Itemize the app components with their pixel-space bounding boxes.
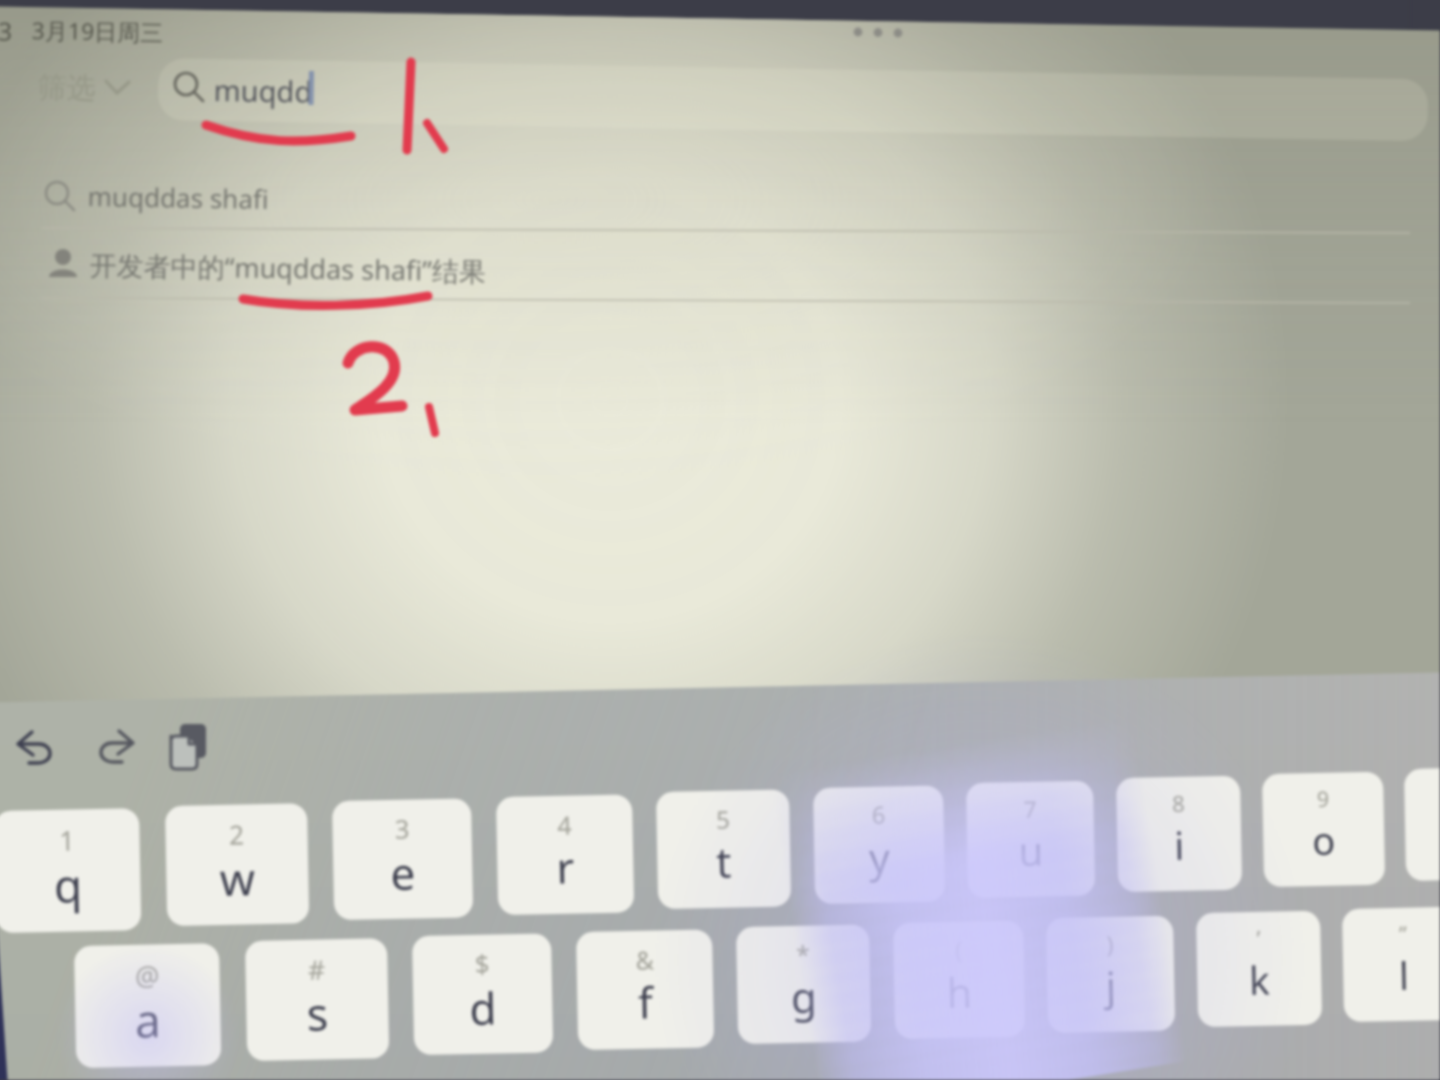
staticText: ’ (1196, 922, 1322, 1038)
staticText: i (1117, 817, 1243, 933)
staticText: y (814, 827, 946, 946)
button[interactable]: 3 (332, 798, 473, 920)
staticText: & (576, 941, 714, 1062)
button[interactable]: ” (1342, 907, 1440, 1022)
staticText: r (497, 836, 635, 957)
staticText: muqddas shafi (87, 178, 269, 216)
button[interactable]: 9 (1262, 772, 1385, 887)
staticText: $ (412, 945, 553, 1067)
staticText: 9:23 (0, 13, 13, 48)
staticText: g (737, 966, 872, 1080)
button[interactable]: 5 (656, 789, 791, 909)
staticText: s (246, 981, 390, 1080)
staticText: 开发者中的“muqddas shafi”结果 (89, 246, 487, 290)
button[interactable]: Redo (90, 728, 136, 772)
staticText: t (657, 831, 792, 951)
button[interactable]: 6 (813, 785, 945, 904)
staticText: k (1197, 952, 1323, 1068)
staticText: 1 (0, 820, 141, 945)
staticText: p (1405, 807, 1440, 921)
staticText: 8 (1116, 787, 1242, 903)
staticText: d (413, 976, 554, 1080)
button[interactable] (0, 232, 1410, 300)
button[interactable]: 8 (1116, 776, 1242, 892)
staticText: # (245, 950, 389, 1073)
staticText: ” (1342, 918, 1440, 1033)
staticText: 2 (165, 815, 309, 938)
staticText: muqdd (213, 70, 313, 111)
staticText: ) (1046, 928, 1175, 1045)
button[interactable]: @ (74, 943, 221, 1068)
staticText: ( (893, 932, 1025, 1051)
button[interactable]: $ (412, 933, 553, 1055)
button[interactable]: * (736, 924, 871, 1044)
staticText: 3 (332, 810, 473, 932)
button[interactable]: Undo (15, 729, 61, 773)
staticText: 6 (813, 797, 945, 916)
staticText: 5 (656, 801, 791, 921)
button[interactable]: 4 (496, 794, 634, 915)
button[interactable]: 2 (165, 803, 309, 926)
button[interactable] (160, 55, 1410, 119)
staticText: * (736, 936, 871, 1056)
staticText: 0 (1404, 778, 1440, 892)
button[interactable]: 0 (1404, 767, 1440, 881)
staticText: j (1047, 957, 1176, 1074)
staticText: 筛选 (37, 69, 96, 107)
staticText: 4 (496, 806, 634, 927)
button[interactable]: ’ (1196, 911, 1322, 1027)
button[interactable]: More options (850, 16, 910, 52)
button[interactable]: # (245, 938, 389, 1061)
staticText: a (75, 987, 222, 1080)
staticText: 7 (966, 793, 1095, 910)
staticText: w (166, 846, 310, 969)
staticText: f (577, 971, 715, 1080)
staticText: @ (74, 955, 221, 1080)
button[interactable]: & (576, 929, 714, 1050)
button[interactable]: Clipboard (166, 722, 212, 774)
staticText: q (0, 852, 142, 977)
staticText: 9 (1262, 783, 1385, 898)
button[interactable] (0, 160, 1410, 228)
staticText: e (333, 841, 474, 963)
button[interactable]: ) (1046, 916, 1175, 1033)
button[interactable]: 7 (966, 781, 1095, 898)
staticText: h (894, 962, 1026, 1080)
staticText: 3月19日周三 (31, 14, 164, 47)
button[interactable] (30, 66, 140, 114)
button[interactable]: 1 (0, 808, 141, 933)
staticText: o (1263, 813, 1386, 928)
staticText: l (1343, 948, 1440, 1063)
staticText: u (967, 822, 1096, 939)
